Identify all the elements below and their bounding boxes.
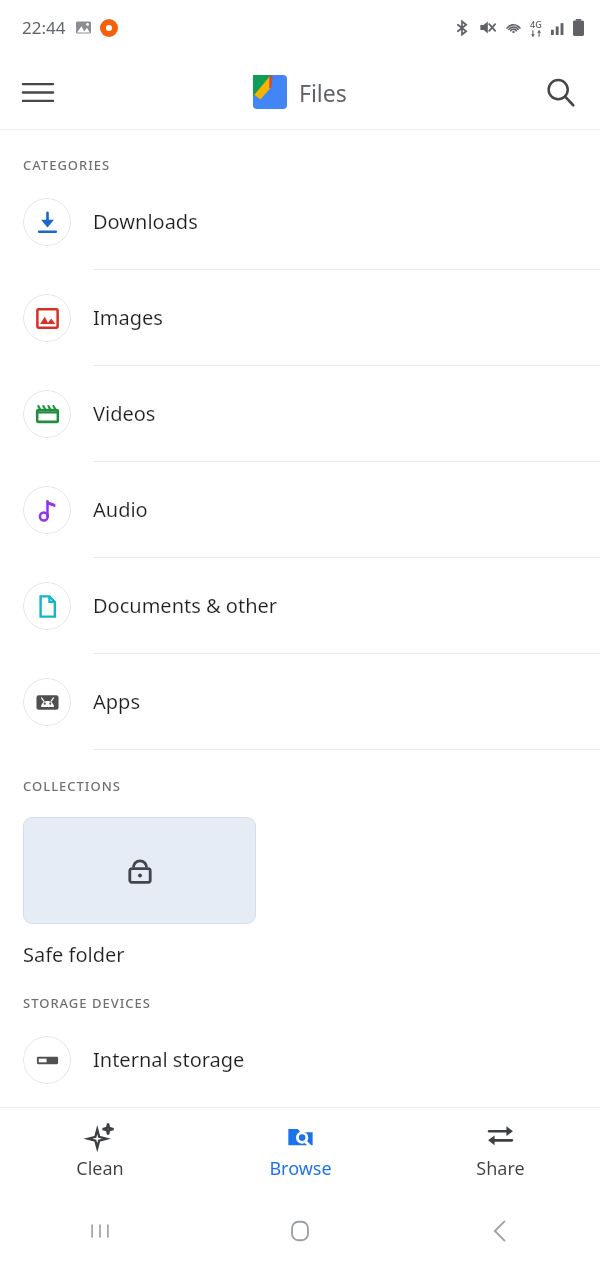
- button[interactable]: Browse: [200, 1107, 400, 1195]
- staticText: Images: [93, 304, 163, 331]
- staticText: STORAGE DEVICES: [23, 994, 151, 1012]
- button[interactable]: Share: [400, 1107, 600, 1195]
- button[interactable]: [23, 817, 256, 924]
- staticText: Internal storage: [93, 1046, 245, 1073]
- button[interactable]: Home: [200, 1195, 400, 1267]
- button[interactable]: Apps: [0, 654, 600, 750]
- button[interactable]: Back: [400, 1195, 600, 1267]
- button[interactable]: Internal storage: [0, 1012, 600, 1107]
- staticText: Share: [476, 1156, 525, 1181]
- staticText: Safe folder: [23, 941, 125, 968]
- staticText: 22:44: [22, 16, 66, 39]
- staticText: COLLECTIONS: [23, 777, 121, 795]
- staticText: Downloads: [93, 208, 198, 235]
- staticText: Clean: [76, 1156, 124, 1181]
- button[interactable]: Downloads: [0, 174, 600, 270]
- staticText: Apps: [93, 688, 140, 715]
- button[interactable]: Open navigation menu: [10, 64, 66, 120]
- staticText: Files: [299, 77, 347, 108]
- button[interactable]: Recent apps: [0, 1195, 200, 1267]
- staticText: 4G: [530, 18, 542, 30]
- staticText: Videos: [93, 400, 156, 427]
- staticText: Audio: [93, 496, 148, 523]
- button[interactable]: Clean: [0, 1107, 200, 1195]
- staticText: Browse: [269, 1156, 332, 1181]
- button[interactable]: Audio: [0, 462, 600, 558]
- button[interactable]: Videos: [0, 366, 600, 462]
- button[interactable]: Search: [532, 64, 588, 120]
- staticText: Documents & other: [93, 592, 278, 619]
- button[interactable]: Documents & other: [0, 558, 600, 654]
- button[interactable]: Images: [0, 270, 600, 366]
- staticText: CATEGORIES: [23, 156, 111, 174]
